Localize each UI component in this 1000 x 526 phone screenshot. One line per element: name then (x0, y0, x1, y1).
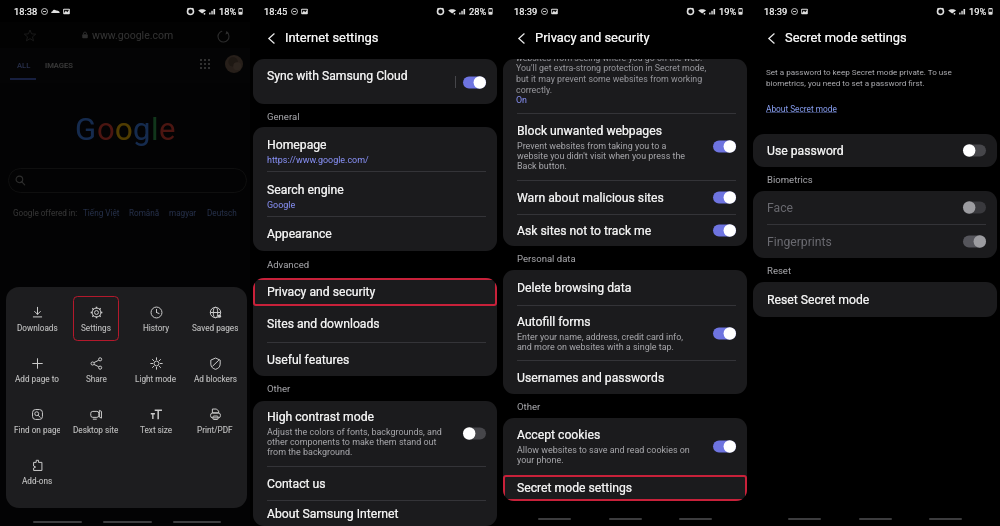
button[interactable]: Toggle (463, 427, 486, 440)
button[interactable]: Account (225, 55, 243, 73)
button[interactable]: Fingerprints (753, 225, 997, 258)
button[interactable]: Light mode (133, 347, 179, 392)
button[interactable]: History (133, 296, 179, 341)
button[interactable]: Bookmark (22, 28, 38, 44)
button[interactable]: Toggle (713, 440, 736, 453)
button[interactable]: Useful features (253, 343, 497, 376)
button[interactable]: Toggle (713, 191, 736, 204)
staticText: Contact us (267, 477, 326, 491)
button[interactable]: Ask sites not to track me (503, 215, 747, 246)
button[interactable]: IMAGES (45, 61, 73, 70)
button[interactable]: Block unwanted webpages (503, 114, 747, 180)
staticText: 18:38 (14, 6, 38, 17)
button[interactable]: Search (8, 168, 247, 193)
button[interactable]: Add page to (14, 347, 60, 392)
staticText: Secret mode settings (517, 481, 633, 495)
button[interactable]: Google apps (197, 56, 213, 72)
button[interactable]: Back (764, 31, 778, 45)
button[interactable]: About Secret mode (766, 104, 837, 114)
button[interactable]: Search engine (253, 172, 497, 216)
button[interactable]: Privacy and security (253, 278, 497, 306)
staticText: Add-ons (22, 476, 53, 486)
staticText: 19% (969, 6, 987, 17)
button[interactable]: Toggle (463, 76, 486, 89)
button[interactable]: Tiếng Việt (83, 208, 120, 218)
button[interactable]: Back (264, 31, 278, 45)
button[interactable]: Reload (215, 28, 231, 44)
button[interactable]: Toggle (963, 235, 986, 248)
button[interactable]: Navigation (538, 518, 571, 520)
button[interactable]: Back (514, 31, 528, 45)
staticText: Privacy and security (267, 285, 376, 299)
button[interactable]: Navigation (929, 518, 962, 520)
button[interactable]: Usernames and passwords (503, 361, 747, 394)
button[interactable]: Toggle (963, 201, 986, 214)
button[interactable]: Desktop site (73, 398, 119, 443)
staticText: Sync with Samsung Cloud (267, 69, 408, 83)
staticText: 18:45 (264, 6, 288, 17)
button[interactable]: Toggle (713, 140, 736, 153)
staticText: General (267, 111, 300, 122)
button[interactable]: ALL (17, 61, 31, 70)
button[interactable]: Print/PDF (192, 398, 238, 443)
button[interactable]: Română (129, 208, 160, 218)
staticText: Internet settings (285, 30, 379, 45)
button[interactable]: Downloads (14, 296, 60, 341)
staticText: Add page to (15, 374, 59, 384)
staticText: High contrast mode (267, 410, 375, 424)
button[interactable]: Add-ons (14, 449, 60, 494)
button[interactable]: Toggle (713, 224, 736, 237)
button[interactable]: About Samsung Internet (253, 501, 497, 526)
button[interactable]: Find on page (14, 398, 60, 443)
staticText: Set a password to keep Secret mode priva… (766, 67, 952, 88)
staticText: https://www.google.com/ (267, 155, 369, 165)
button[interactable]: Reset Secret mode (753, 282, 997, 317)
button[interactable]: magyar (169, 208, 197, 218)
staticText: Reset Secret mode (767, 293, 870, 307)
button[interactable]: Sync with Samsung Cloud (253, 59, 497, 104)
button[interactable]: Share (73, 347, 119, 392)
staticText: Face (767, 201, 794, 215)
button[interactable]: Homepage (253, 127, 497, 171)
staticText: Block unwanted webpages (517, 124, 662, 138)
button[interactable]: Navigation (679, 518, 712, 520)
button[interactable]: Autofill forms (503, 306, 747, 360)
staticText: o (115, 111, 133, 147)
staticText: Usernames and passwords (517, 371, 665, 385)
button[interactable]: Settings (73, 296, 119, 341)
button[interactable]: Navigation (788, 518, 821, 520)
button[interactable]: Saved pages (192, 296, 238, 341)
button[interactable]: Appearance (253, 217, 497, 251)
button[interactable]: Warn about malicious sites (503, 181, 747, 214)
staticText: Other (517, 401, 541, 412)
staticText: 18:39 (764, 6, 788, 17)
button[interactable]: Toggle (963, 144, 986, 157)
button[interactable]: Contact us (253, 467, 497, 500)
button[interactable]: Use password (753, 134, 997, 167)
button[interactable]: Sites and downloads (253, 306, 497, 342)
button[interactable]: Toggle (713, 327, 736, 340)
button[interactable]: Ad blockers (192, 347, 238, 392)
button[interactable]: Face (753, 191, 997, 224)
button[interactable]: Deutsch (207, 208, 237, 218)
staticText: Saved pages (192, 323, 238, 333)
staticText: Enter your name, address, credit card in… (517, 332, 684, 352)
button[interactable]: High contrast mode (253, 401, 497, 466)
button[interactable]: www.google.com (92, 29, 174, 41)
staticText: Homepage (267, 138, 327, 152)
staticText: Find on page (14, 425, 60, 435)
button[interactable]: Secret mode settings (503, 475, 747, 501)
button[interactable]: Delete browsing data (503, 270, 747, 305)
button[interactable]: Navigation (859, 518, 892, 520)
staticText: 18:39 (514, 6, 538, 17)
button[interactable]: Navigation (609, 518, 642, 520)
button[interactable]: Text size (133, 398, 179, 443)
button[interactable]: Accept cookies (503, 418, 747, 475)
staticText: Light mode (135, 374, 177, 384)
button[interactable]: G (75, 111, 176, 147)
staticText: About Samsung Internet (267, 507, 399, 521)
staticText: Downloads (17, 323, 58, 333)
